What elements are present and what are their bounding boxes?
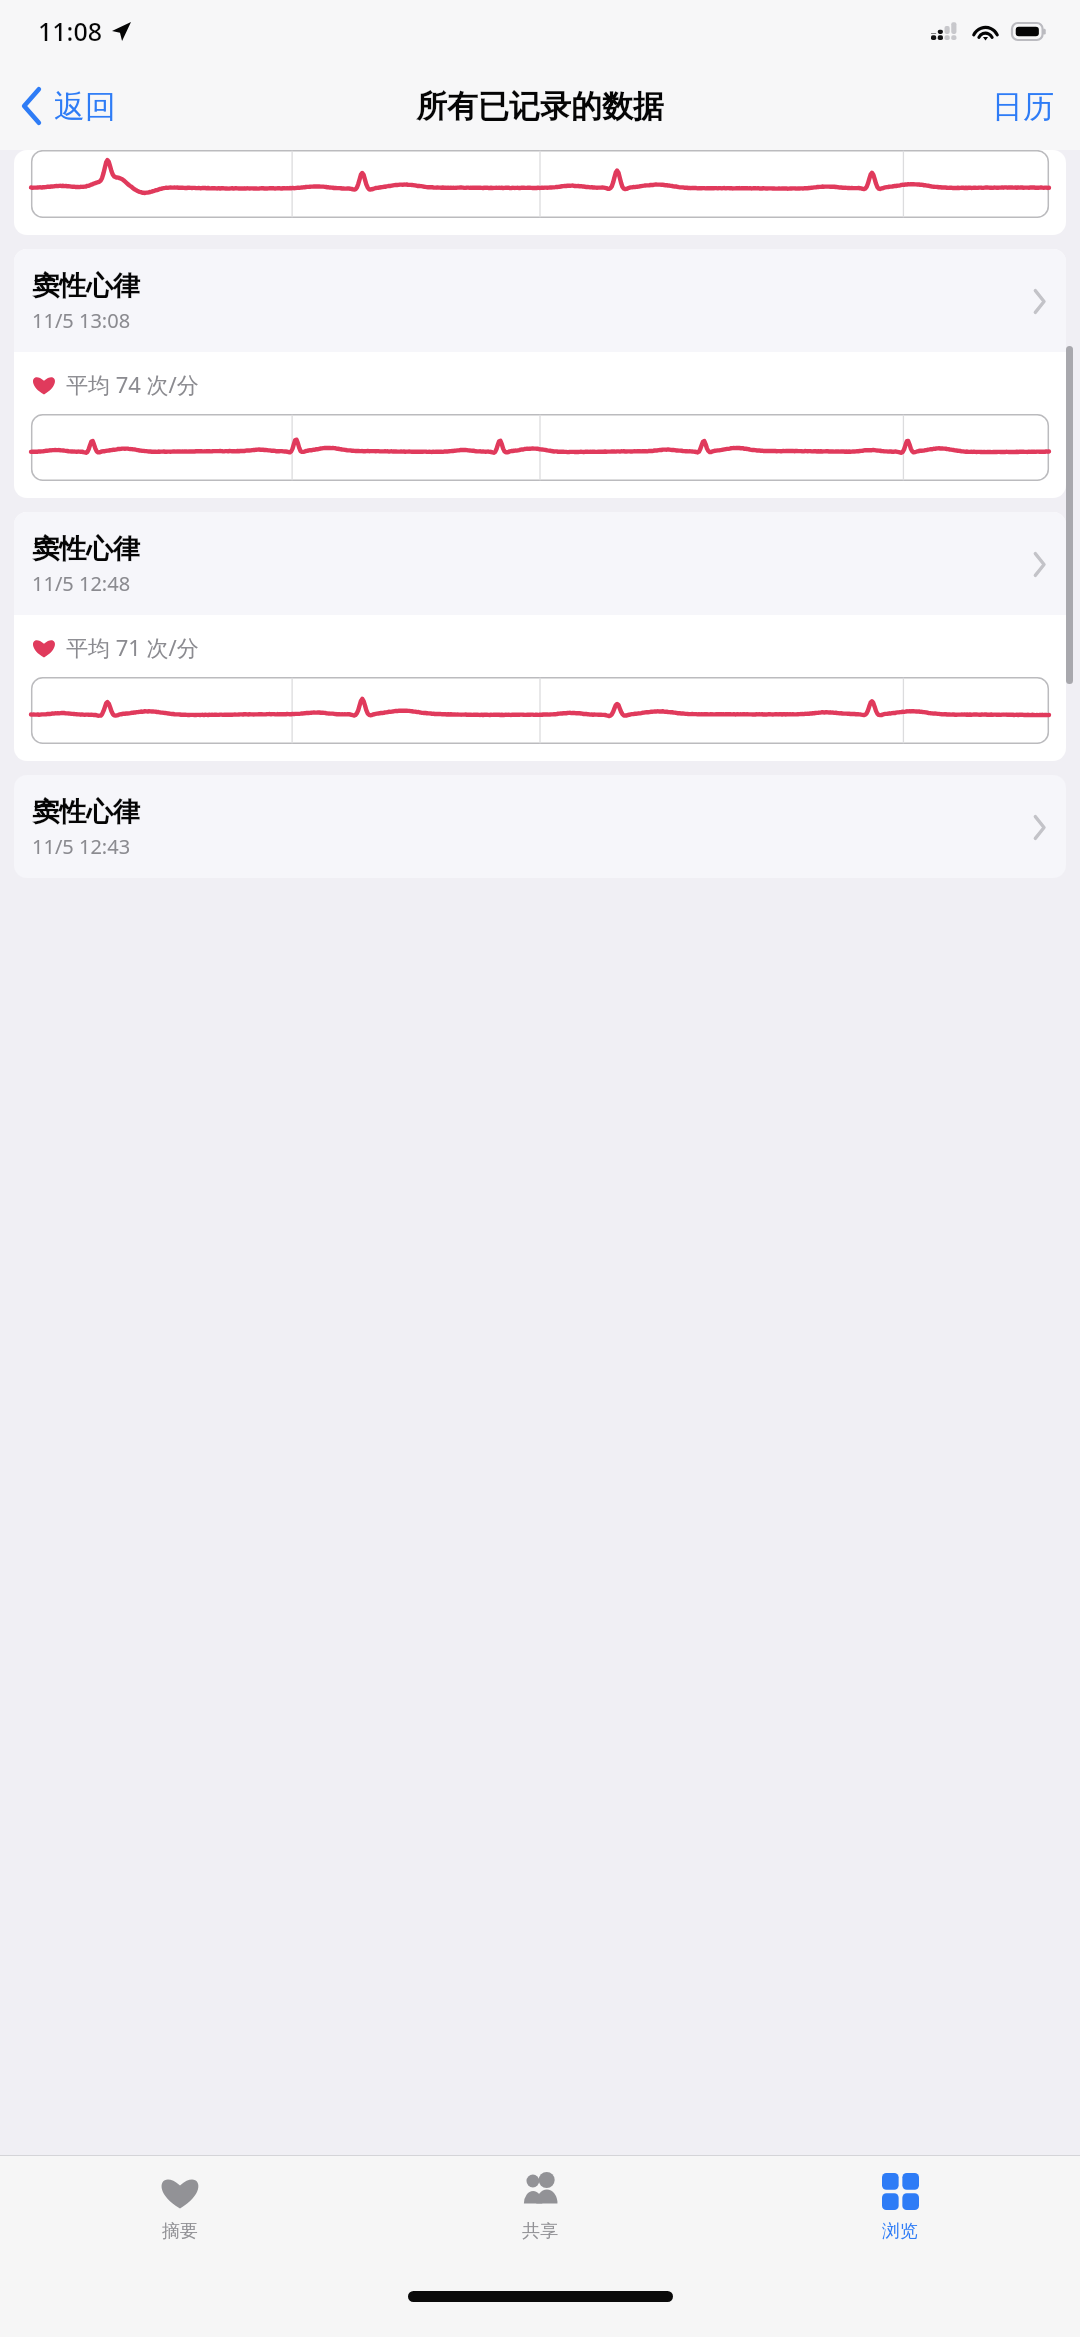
staticText: 返回 [54, 87, 116, 126]
button[interactable]: 浏览 [720, 2156, 1080, 2274]
staticText: 窦性心律 [32, 269, 140, 303]
button[interactable]: 日历 [992, 87, 1054, 126]
staticText: 浏览 [882, 2220, 918, 2243]
button[interactable]: 窦性心律 [14, 249, 1066, 498]
staticText: 窦性心律 [32, 795, 140, 829]
staticText: 日历 [992, 87, 1054, 126]
staticText: 11/5 13:08 [32, 307, 131, 334]
staticText: 11:08 [38, 14, 103, 48]
staticText: 平均 71 次/分 [66, 632, 199, 662]
staticText: 所有已记录的数据 [416, 87, 664, 126]
button[interactable] [14, 150, 1066, 235]
staticText: 摘要 [162, 2220, 198, 2243]
staticText: 11/5 12:43 [32, 833, 131, 860]
button[interactable]: 窦性心律 [14, 775, 1066, 878]
button[interactable]: 摘要 [0, 2156, 360, 2274]
staticText: 11/5 12:48 [32, 570, 131, 597]
button[interactable]: 共享 [360, 2156, 720, 2274]
button[interactable]: 返回 [20, 86, 116, 126]
button[interactable]: 窦性心律 [14, 512, 1066, 761]
staticText: 共享 [522, 2220, 558, 2243]
staticText: 平均 74 次/分 [66, 369, 199, 399]
staticText: 窦性心律 [32, 532, 140, 566]
